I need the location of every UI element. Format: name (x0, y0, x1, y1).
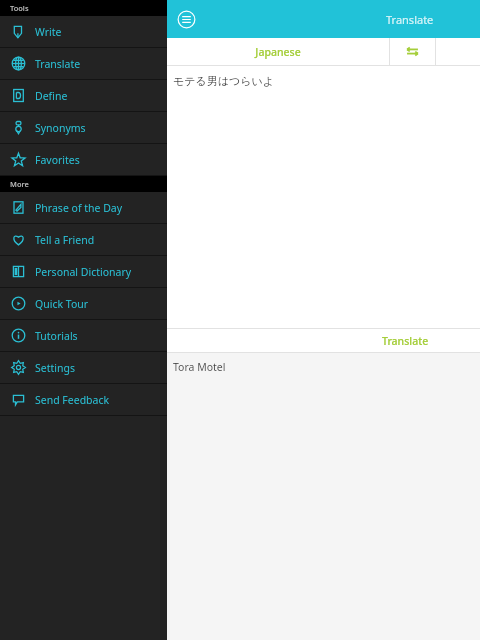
button[interactable]: Tutorials (0, 320, 167, 351)
button[interactable]: Phrase of the Day (0, 192, 167, 223)
staticText: Quick Tour (35, 297, 89, 311)
button[interactable]: Swap languages (390, 38, 435, 65)
staticText: Phrase of the Day (35, 201, 123, 215)
button[interactable]: Define (0, 80, 167, 111)
button[interactable]: モテる男はつらいよ (167, 66, 480, 328)
staticText: Translate (382, 334, 429, 348)
staticText: Personal Dictionary (35, 265, 132, 279)
staticText: Synonyms (35, 121, 86, 135)
staticText: Translate (386, 12, 434, 27)
button[interactable]: Personal Dictionary (0, 256, 167, 287)
button[interactable]: Write (0, 16, 167, 47)
staticText: Send Feedback (35, 393, 110, 407)
button[interactable]: Settings (0, 352, 167, 383)
button[interactable]: Translate (0, 48, 167, 79)
staticText: Tools (10, 3, 29, 13)
staticText: More (10, 179, 29, 189)
button[interactable]: Tell a Friend (0, 224, 167, 255)
staticText: Favorites (35, 153, 80, 167)
button[interactable]: Quick Tour (0, 288, 167, 319)
staticText: モテる男はつらいよ (173, 74, 275, 88)
staticText: Tutorials (35, 329, 78, 343)
staticText: Tell a Friend (35, 233, 95, 247)
button[interactable]: Japanese (167, 38, 389, 65)
staticText: Settings (35, 361, 75, 375)
staticText: Write (35, 25, 62, 39)
staticText: Translate (35, 57, 81, 71)
button[interactable]: Menu (173, 6, 199, 32)
staticText: Define (35, 89, 68, 103)
staticText: Japanese (255, 45, 301, 59)
button[interactable]: Synonyms (0, 112, 167, 143)
button[interactable]: Translate (167, 329, 480, 352)
button[interactable]: Send Feedback (0, 384, 167, 415)
button[interactable]: Favorites (0, 144, 167, 175)
staticText: Tora Motel (173, 360, 226, 374)
